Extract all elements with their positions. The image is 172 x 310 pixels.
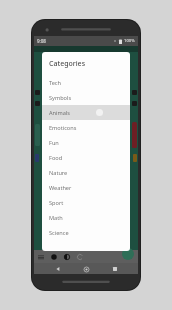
staticText: Categories: [49, 59, 86, 69]
staticText: Emoticons: [49, 124, 77, 132]
staticText: 9:08: [37, 38, 46, 44]
button[interactable]: Math: [42, 210, 130, 225]
button[interactable]: Nature: [42, 165, 130, 180]
staticText: Nature: [49, 169, 68, 177]
button[interactable]: Fun: [42, 135, 130, 150]
button[interactable]: Sport: [42, 195, 130, 210]
button[interactable]: Food: [42, 150, 130, 165]
staticText: Weather: [49, 184, 72, 192]
button[interactable]: Home: [81, 264, 91, 274]
staticText: Tech: [49, 79, 62, 87]
button[interactable]: Weather: [42, 180, 130, 195]
button[interactable]: Recents: [110, 264, 120, 274]
staticText: Math: [49, 214, 63, 222]
button[interactable]: Add: [122, 248, 134, 260]
staticText: Food: [49, 154, 63, 162]
button[interactable]: Reset: [76, 253, 84, 261]
staticText: Symbols: [49, 94, 72, 102]
button[interactable]: Symbols: [42, 90, 130, 105]
staticText: Science: [49, 229, 69, 237]
staticText: 100%: [124, 38, 135, 44]
button[interactable]: Contrast: [63, 253, 71, 261]
staticText: Sport: [49, 199, 64, 207]
button[interactable]: Menu: [37, 253, 45, 261]
staticText: Animals: [49, 109, 70, 117]
button[interactable]: Emoticons: [42, 120, 130, 135]
staticText: Fun: [49, 139, 59, 147]
button[interactable]: Science: [42, 225, 130, 240]
button[interactable]: Animals: [42, 105, 130, 120]
button[interactable]: Tech: [42, 75, 130, 90]
button[interactable]: Back: [53, 264, 63, 274]
button[interactable]: Theme: [50, 253, 58, 261]
